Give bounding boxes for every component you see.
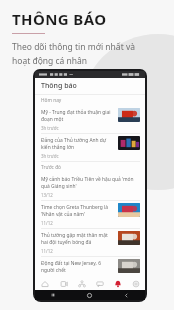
staticText: THÔNG BÁO: [12, 9, 107, 29]
staticText: Đảng của Thủ tướng Anh dự kiến thắng lớn: [41, 137, 114, 151]
button[interactable]: Time chọn Greta Thunberg là 'Nhân vật củ…: [35, 201, 145, 229]
button[interactable]: Home: [35, 277, 54, 290]
staticText: Thủ tướng gặp mặt thân mật hai đội tuyển…: [41, 232, 114, 246]
button[interactable]: Groups: [73, 277, 91, 290]
button[interactable]: Back: [108, 290, 145, 300]
staticText: 3h trước: [41, 125, 59, 131]
staticText: hoạt động cá nhân: [12, 55, 88, 67]
staticText: Time chọn Greta Thunberg là 'Nhân vật củ…: [41, 204, 114, 218]
staticText: Theo dõi thông tin mới nhất và: [12, 41, 136, 53]
staticText: 13/12: [41, 192, 53, 198]
button[interactable]: Thủ tướng gặp mặt thân mật hai đội tuyển…: [35, 229, 145, 257]
button[interactable]: Mỹ - Trung đạt thỏa thuận giai đoạn một: [35, 106, 145, 134]
button[interactable]: Đảng của Thủ tướng Anh dự kiến thắng lớn: [35, 134, 145, 162]
staticText: Trước đó: [41, 164, 62, 171]
button[interactable]: Recents: [35, 290, 71, 300]
staticText: Thông báo: [41, 81, 77, 91]
staticText: 3h trước: [41, 153, 59, 159]
button[interactable]: Notifications: [109, 277, 127, 290]
button[interactable]: Mỹ cảnh báo Triều Tiên về hậu quả 'món q…: [35, 173, 145, 201]
staticText: Mỹ - Trung đạt thỏa thuận giai đoạn một: [41, 109, 114, 123]
button[interactable]: Home: [71, 290, 108, 300]
button[interactable]: Menu: [127, 277, 145, 290]
button[interactable]: Động đất tại New Jersey, 6 người chết: [35, 257, 145, 277]
staticText: Động đất tại New Jersey, 6 người chết: [41, 260, 114, 274]
staticText: Mỹ cảnh báo Triều Tiên về hậu quả 'món q…: [41, 176, 136, 190]
staticText: 11/12: [41, 220, 53, 226]
button[interactable]: Video: [54, 277, 73, 290]
staticText: 11/12: [41, 248, 53, 254]
staticText: Hôm nay: [41, 97, 62, 104]
button[interactable]: Messages: [91, 277, 109, 290]
